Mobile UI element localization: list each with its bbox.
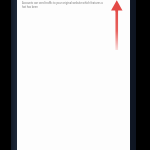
- button[interactable]: Accounts can send traffic to your origin…: [17, 0, 130, 150]
- staticText: Accounts can send traffic to your origin…: [22, 1, 103, 5]
- staticText: hat has been: [22, 5, 38, 9]
- button[interactable]: Scroll up: [110, 0, 123, 50]
